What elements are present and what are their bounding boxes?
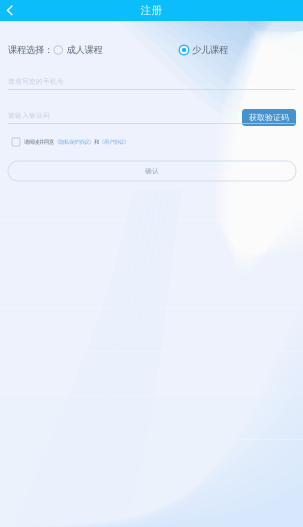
staticText: 注册 [140, 4, 162, 17]
staticText: 获取验证码 [249, 113, 289, 122]
staticText: 成人课程 [66, 44, 102, 56]
staticText: 请填写您的手机号 [8, 77, 64, 86]
button[interactable]: Agree to terms [8, 138, 24, 146]
button[interactable]: 《隐私保护协议》 [54, 139, 94, 145]
button[interactable]: Back [0, 0, 20, 21]
button[interactable]: 少儿课程 [179, 44, 228, 56]
button[interactable]: 确认 [8, 161, 296, 181]
staticText: 《用户协议》 [99, 139, 129, 145]
staticText: 课程选择： [8, 44, 53, 56]
button[interactable]: 《用户协议》 [99, 139, 129, 145]
staticText: 确认 [145, 167, 159, 175]
staticText: 《隐私保护协议》 [54, 139, 94, 145]
button[interactable]: 成人课程 [53, 44, 102, 56]
button[interactable]: 获取验证码 [242, 109, 296, 126]
staticText: 请阅读并同意 [24, 139, 54, 145]
staticText: 少儿课程 [192, 44, 228, 56]
staticText: 和 [94, 139, 99, 145]
staticText: 请输入验证码 [8, 111, 50, 120]
